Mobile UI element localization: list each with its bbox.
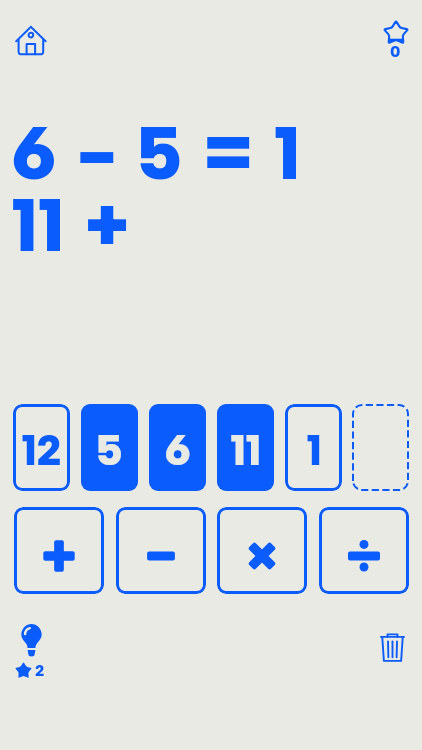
- staticText: 5: [96, 424, 123, 476]
- button[interactable]: 1: [285, 404, 342, 491]
- staticText: 6: [164, 424, 191, 476]
- button[interactable]: Stars: [372, 14, 418, 66]
- staticText: 1: [306, 424, 322, 476]
- staticText: 2: [35, 661, 45, 680]
- staticText: 12: [21, 424, 62, 476]
- button[interactable]: 5: [81, 404, 138, 491]
- button[interactable]: TIMES: [217, 507, 307, 594]
- button[interactable]: Hint: [10, 618, 60, 682]
- button[interactable]: 6: [149, 404, 206, 491]
- button[interactable]: MINUS: [116, 507, 206, 594]
- button[interactable]: Clear: [370, 622, 414, 666]
- button[interactable]: 12: [13, 404, 70, 491]
- staticText: 6 - 5 = 1 11 +: [11, 108, 301, 270]
- button[interactable]: [352, 404, 409, 491]
- staticText: 0: [390, 42, 401, 61]
- button[interactable]: DIV: [319, 507, 409, 594]
- button[interactable]: 11: [217, 404, 274, 491]
- staticText: 11: [230, 424, 261, 476]
- button[interactable]: PLUS: [14, 507, 104, 594]
- button[interactable]: Home: [7, 18, 57, 68]
